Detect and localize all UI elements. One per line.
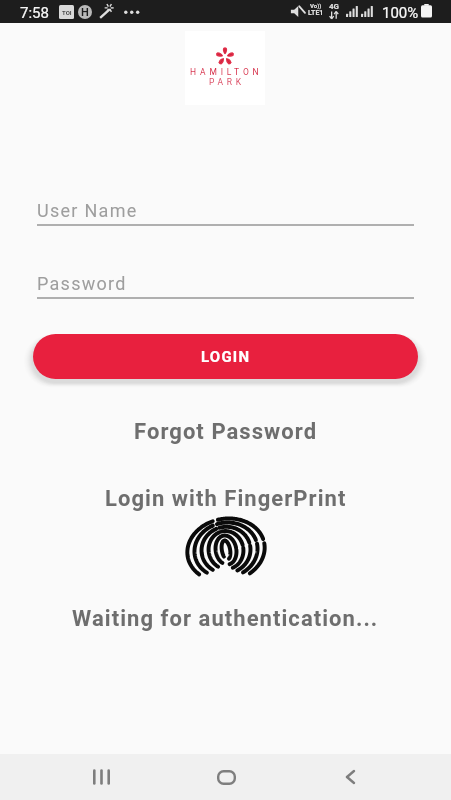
staticText: 100% xyxy=(382,4,419,22)
staticText: Vo)) xyxy=(310,2,322,9)
staticText: HAMILTON xyxy=(190,67,263,77)
staticText: Waiting for authentication... xyxy=(72,606,379,632)
staticText: PARK xyxy=(209,77,245,87)
staticText: H xyxy=(81,6,89,19)
button[interactable]: Forgot Password xyxy=(134,419,318,445)
staticText: User Name xyxy=(37,200,138,221)
staticText: Password xyxy=(37,273,127,294)
staticText: LOGIN xyxy=(201,348,251,366)
button[interactable]: Home xyxy=(202,754,250,800)
staticText: 7:58 xyxy=(20,4,49,22)
staticText: LTE1 xyxy=(308,9,324,17)
staticText: 4G xyxy=(329,2,340,11)
staticText: TOI xyxy=(62,9,72,16)
button[interactable]: Fingerprint xyxy=(183,514,269,590)
button[interactable]: Back xyxy=(326,754,374,800)
staticText: Forgot Password xyxy=(134,419,318,445)
staticText: Login with FingerPrint xyxy=(105,486,347,512)
button[interactable]: Recents xyxy=(77,754,125,800)
button[interactable]: LOGIN xyxy=(33,334,418,379)
